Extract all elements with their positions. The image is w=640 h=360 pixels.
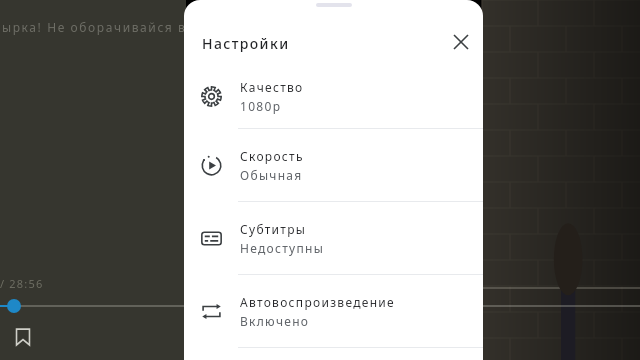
staticText: Автовоспроизведение [240, 294, 395, 310]
staticText: Субтитры [240, 221, 307, 237]
staticText: Настройки [202, 34, 290, 53]
staticText: ырка! Не оборачивайся в [2, 19, 187, 35]
staticText: Включено [240, 313, 310, 329]
staticText: / 28:56 [0, 276, 44, 291]
button[interactable]: Субтитры [184, 202, 483, 274]
button[interactable]: Качество [184, 64, 483, 128]
staticText: Качество [240, 79, 304, 95]
button[interactable]: Скорость [184, 129, 483, 201]
staticText: 1080p [240, 98, 282, 114]
button[interactable]: Save [6, 320, 40, 354]
button[interactable]: Close [445, 26, 477, 58]
staticText: Обычная [240, 167, 303, 183]
staticText: Скорость [240, 148, 304, 164]
button[interactable]: Автовоспроизведение [184, 275, 483, 347]
staticText: Недоступны [240, 240, 325, 256]
